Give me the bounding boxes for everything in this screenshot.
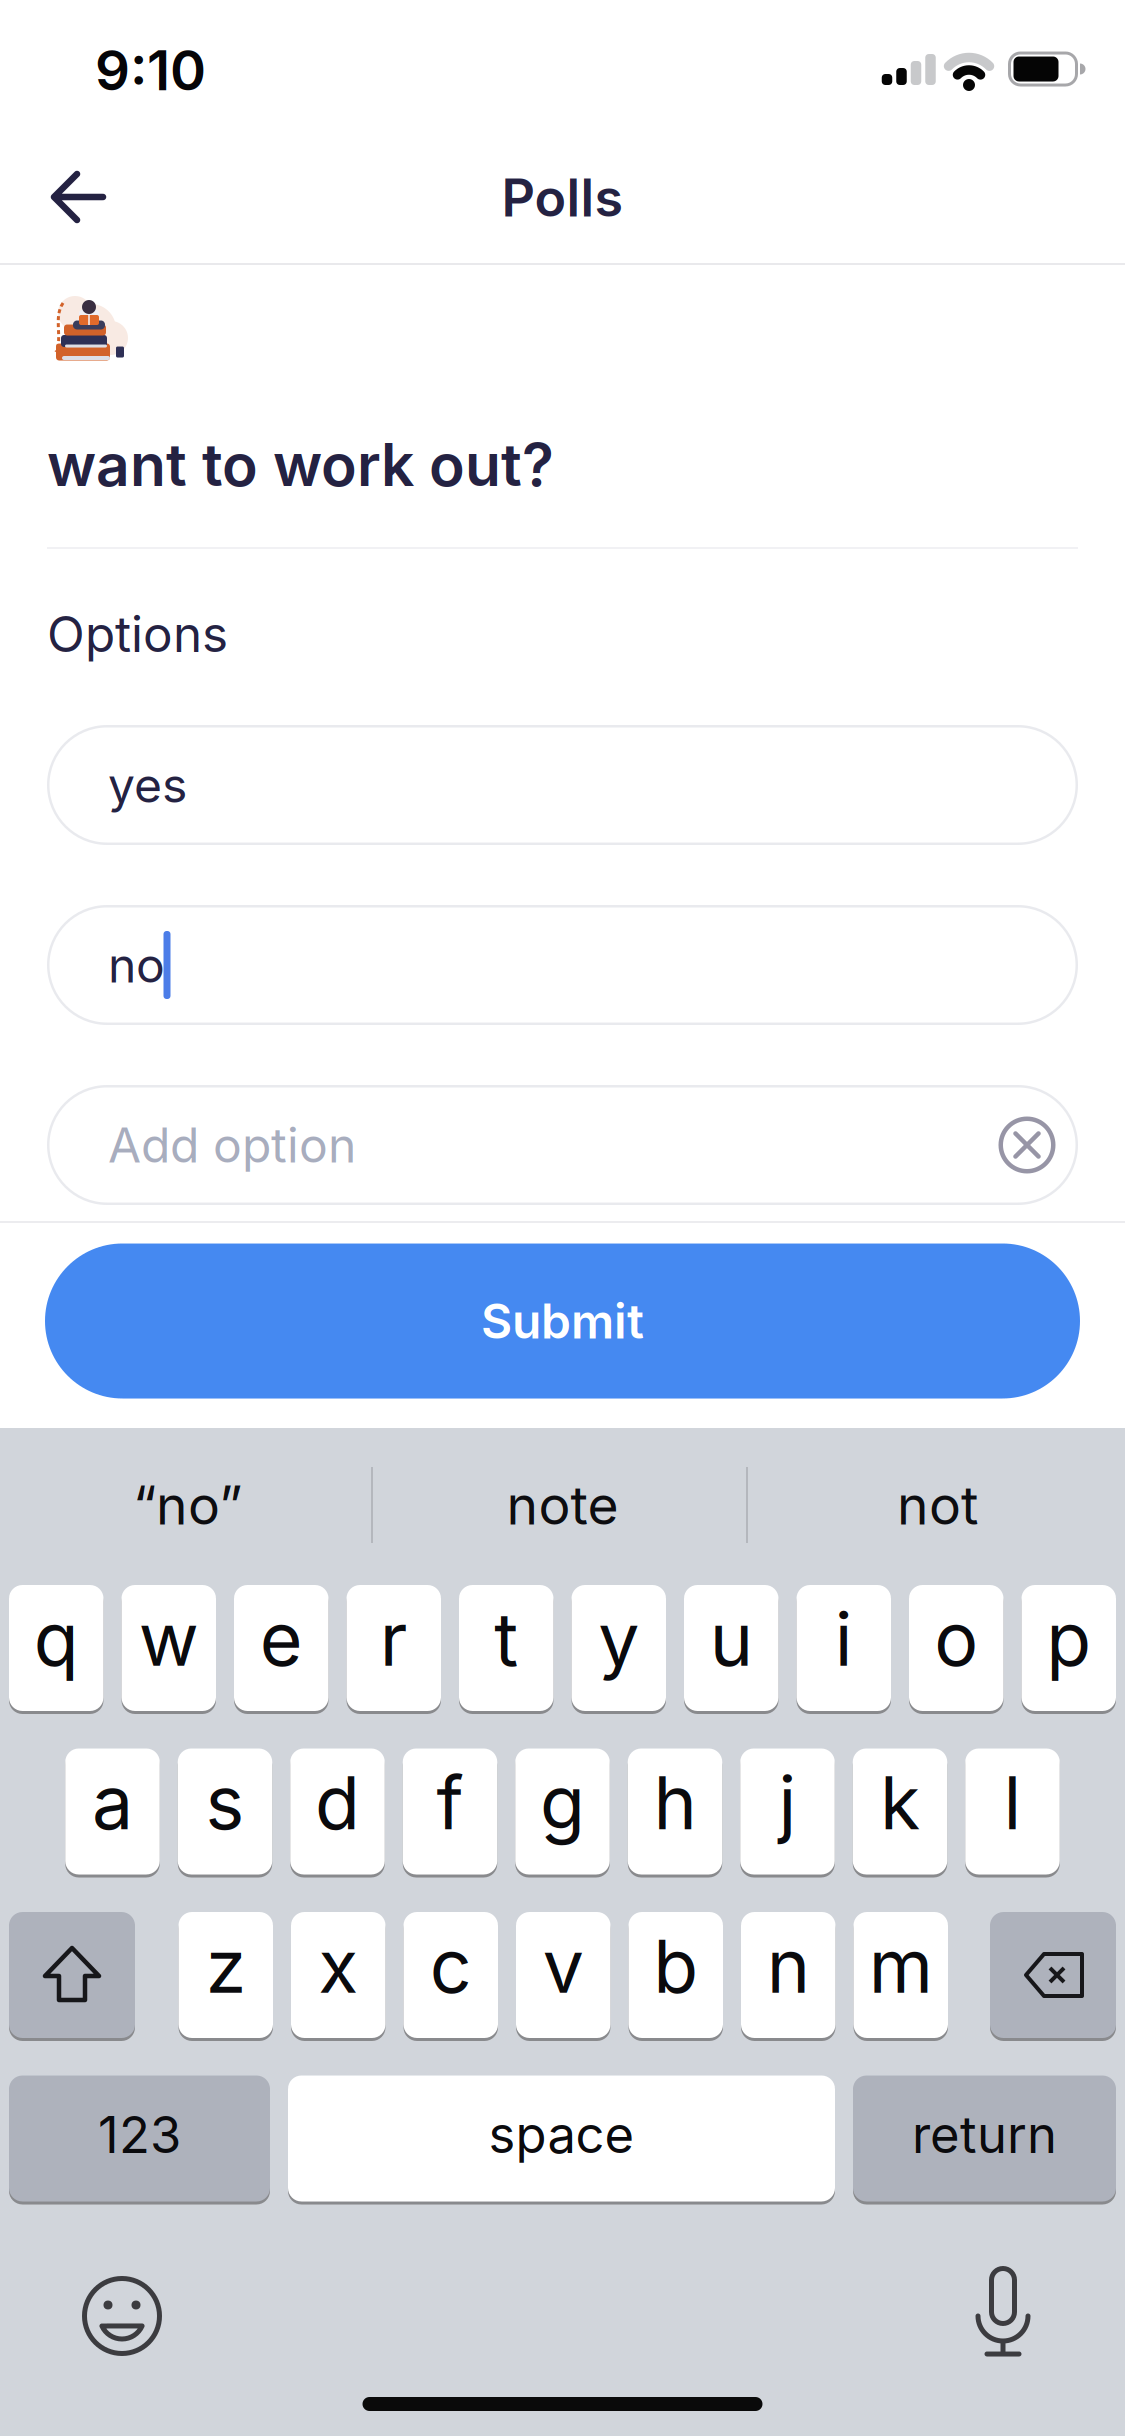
button[interactable]: q bbox=[9, 1583, 103, 1712]
staticText: s bbox=[205, 1759, 244, 1846]
button[interactable]: return bbox=[853, 2074, 1116, 2203]
staticText: Submit bbox=[481, 1293, 644, 1349]
button[interactable]: note bbox=[382, 1450, 742, 1560]
staticText: w bbox=[139, 1596, 199, 1682]
staticText: want to work out? bbox=[47, 430, 554, 499]
staticText: 123 bbox=[98, 2105, 181, 2164]
button[interactable]: space bbox=[288, 2074, 835, 2203]
button[interactable]: o bbox=[909, 1583, 1003, 1712]
button[interactable]: l bbox=[965, 1747, 1060, 1876]
button[interactable]: x bbox=[291, 1910, 385, 2039]
staticText: space bbox=[488, 2105, 634, 2164]
staticText: z bbox=[206, 1923, 246, 2009]
staticText: Options bbox=[47, 605, 228, 663]
staticText: f bbox=[436, 1759, 463, 1846]
button[interactable]: Clear bbox=[998, 1116, 1055, 1173]
button[interactable]: Emoji bbox=[77, 2271, 167, 2361]
staticText: x bbox=[318, 1923, 358, 2009]
staticText: b bbox=[653, 1923, 698, 2009]
staticText: l bbox=[1003, 1759, 1021, 1846]
button[interactable]: m bbox=[853, 1910, 948, 2039]
button[interactable]: b bbox=[628, 1910, 723, 2039]
staticText: Polls bbox=[501, 167, 623, 228]
button[interactable]: c bbox=[403, 1910, 498, 2039]
button[interactable]: w bbox=[121, 1583, 216, 1712]
staticText: not bbox=[897, 1473, 978, 1536]
staticText: g bbox=[540, 1759, 585, 1846]
button[interactable]: u bbox=[684, 1583, 778, 1712]
staticText: v bbox=[543, 1923, 584, 2009]
button[interactable]: v bbox=[516, 1910, 610, 2039]
staticText: note bbox=[506, 1473, 618, 1536]
staticText: k bbox=[880, 1759, 920, 1846]
staticText: h bbox=[653, 1759, 696, 1846]
button[interactable]: “no” bbox=[7, 1450, 367, 1560]
staticText: t bbox=[494, 1596, 518, 1682]
button[interactable]: Back bbox=[53, 173, 105, 221]
staticText: j bbox=[778, 1759, 796, 1846]
staticText: r bbox=[380, 1596, 408, 1682]
button[interactable]: s bbox=[178, 1747, 272, 1876]
staticText: no bbox=[108, 937, 165, 993]
button[interactable]: yes bbox=[47, 725, 1078, 845]
button[interactable]: d bbox=[290, 1747, 385, 1876]
staticText: y bbox=[598, 1596, 639, 1682]
button[interactable]: Shift bbox=[9, 1910, 135, 2039]
button[interactable]: Dictate bbox=[958, 2258, 1048, 2362]
staticText: q bbox=[34, 1596, 79, 1682]
button[interactable]: h bbox=[628, 1747, 722, 1876]
button[interactable]: t bbox=[459, 1583, 553, 1712]
button[interactable]: not bbox=[757, 1450, 1117, 1560]
button[interactable]: y bbox=[571, 1583, 666, 1712]
staticText: p bbox=[1046, 1596, 1091, 1682]
button[interactable]: f bbox=[403, 1747, 497, 1876]
staticText: e bbox=[260, 1596, 303, 1682]
staticText: o bbox=[934, 1596, 978, 1682]
staticText: d bbox=[315, 1759, 360, 1846]
staticText: a bbox=[92, 1759, 133, 1846]
staticText: yes bbox=[108, 757, 187, 813]
button[interactable]: Add option bbox=[47, 1085, 1078, 1205]
button[interactable]: no bbox=[47, 905, 1078, 1025]
button[interactable]: z bbox=[178, 1910, 273, 2039]
button[interactable]: Submit bbox=[45, 1243, 1080, 1398]
staticText: Add option bbox=[108, 1117, 356, 1173]
staticText: m bbox=[869, 1923, 933, 2009]
staticText: return bbox=[912, 2105, 1057, 2164]
button[interactable]: k bbox=[853, 1747, 947, 1876]
staticText: n bbox=[767, 1923, 810, 2009]
button[interactable]: r bbox=[346, 1583, 441, 1712]
button[interactable]: a bbox=[65, 1747, 160, 1876]
button[interactable]: 123 bbox=[9, 2074, 270, 2203]
button[interactable]: i bbox=[796, 1583, 891, 1712]
button[interactable]: Delete bbox=[990, 1910, 1116, 2039]
button[interactable]: p bbox=[1021, 1583, 1116, 1712]
staticText: u bbox=[710, 1596, 753, 1682]
staticText: c bbox=[430, 1923, 472, 2009]
button[interactable]: g bbox=[515, 1747, 610, 1876]
staticText: 9:10 bbox=[95, 38, 206, 102]
button[interactable]: n bbox=[741, 1910, 835, 2039]
button[interactable]: j bbox=[740, 1747, 835, 1876]
staticText: “no” bbox=[133, 1473, 242, 1536]
button[interactable]: e bbox=[234, 1583, 328, 1712]
staticText: i bbox=[835, 1596, 853, 1682]
